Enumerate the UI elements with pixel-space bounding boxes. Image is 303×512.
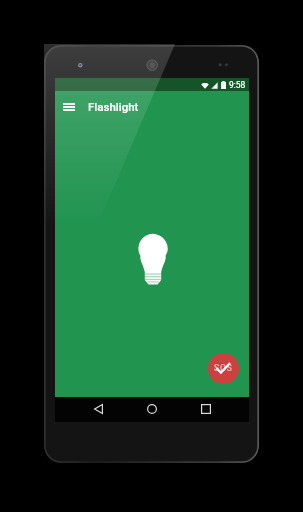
staticText: Flashlight: [88, 100, 139, 113]
staticText: 9:58: [229, 80, 246, 90]
button[interactable]: Open navigation menu: [59, 97, 78, 116]
button[interactable]: Back: [86, 397, 110, 421]
button[interactable]: Home: [140, 397, 164, 421]
staticText: SOS: [214, 363, 233, 373]
button[interactable]: SOS emergency signal: [208, 353, 239, 384]
button[interactable]: Recent apps: [194, 397, 218, 421]
